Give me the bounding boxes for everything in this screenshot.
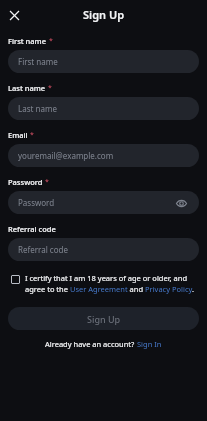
staticText: First name (18, 56, 58, 67)
staticText: * (30, 130, 34, 140)
staticText: Password (8, 177, 43, 187)
staticText: Sign Up (83, 7, 125, 22)
button[interactable]: First name (8, 50, 199, 73)
staticText: Last name (8, 83, 46, 93)
staticText: Last name (18, 103, 57, 114)
staticText: First name (8, 36, 47, 46)
staticText: * (49, 36, 53, 46)
button[interactable]: Password (8, 191, 199, 214)
staticText: Referral code (18, 244, 68, 255)
staticText: Sign In (137, 339, 162, 349)
button[interactable]: Close (4, 5, 24, 25)
staticText: Password (18, 197, 55, 208)
button[interactable]: I certify that I am 18 years of age or o… (8, 273, 199, 294)
staticText: * (48, 83, 52, 93)
staticText: * (45, 177, 49, 187)
button[interactable]: Referral code (8, 238, 199, 261)
staticText: Sign Up (87, 313, 121, 325)
button[interactable]: Show password (173, 195, 189, 211)
button[interactable]: youremail@example.com (8, 144, 199, 167)
button[interactable]: Sign Up (8, 307, 199, 330)
staticText: Email (8, 130, 28, 140)
staticText: youremail@example.com (18, 150, 114, 161)
staticText: Referral code (8, 224, 56, 234)
staticText: I certify that I am 18 years of age or o… (25, 273, 199, 294)
button[interactable]: Already have an account? (45, 339, 162, 349)
button[interactable]: Last name (8, 97, 199, 120)
staticText: Already have an account? (45, 339, 137, 349)
